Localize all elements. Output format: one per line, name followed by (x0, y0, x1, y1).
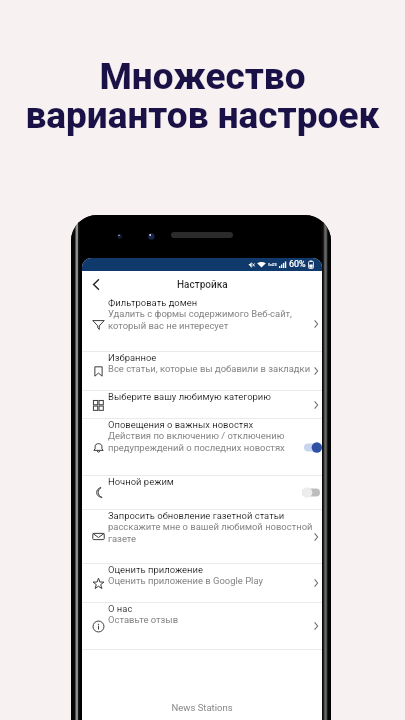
staticText: Все статьи, которые вы добавили в заклад… (108, 363, 311, 374)
staticText: вариантов настроек (25, 94, 380, 137)
staticText: Оставьте отзыв (108, 614, 179, 625)
button[interactable]: Выберите вашу любимую категорию (82, 391, 322, 418)
staticText: Настройка (177, 279, 228, 291)
staticText: Фильтровать домен (108, 297, 198, 308)
button[interactable]: Back (85, 271, 107, 297)
staticText: Ночной режим (108, 476, 174, 487)
button[interactable]: Оценить приложение (82, 564, 322, 602)
button[interactable]: Ночной режим (82, 476, 322, 509)
staticText: Оценить приложение в Google Play (108, 575, 263, 586)
button[interactable]: Оповещения о важных новостях (82, 419, 322, 475)
staticText: О нас (108, 603, 133, 614)
button[interactable]: Избранное (82, 352, 322, 390)
staticText: Удалить с формы содержимого Веб-сайт, ко… (108, 308, 315, 332)
staticText: 60% (289, 259, 306, 270)
staticText: VoLTE (268, 263, 277, 267)
staticText: Выберите вашу любимую категорию (108, 391, 271, 402)
staticText: Действия по включению / отключению преду… (108, 430, 315, 454)
button[interactable]: Запросить обновление газетной статьи (82, 510, 322, 563)
staticText: Оценить приложение (108, 564, 203, 575)
staticText: Избранное (108, 352, 157, 363)
button[interactable]: Turn off (304, 442, 322, 453)
button[interactable]: Turn on (302, 487, 320, 498)
button[interactable]: Фильтровать домен (82, 297, 322, 351)
staticText: News Stations (82, 702, 322, 713)
button[interactable]: О нас (82, 603, 322, 649)
staticText: Оповещения о важных новостях (108, 419, 254, 430)
staticText: Запросить обновление газетной статьи (108, 510, 285, 521)
staticText: Множество (99, 55, 306, 98)
staticText: расскажите мне о вашей любимой новостной… (108, 521, 315, 545)
